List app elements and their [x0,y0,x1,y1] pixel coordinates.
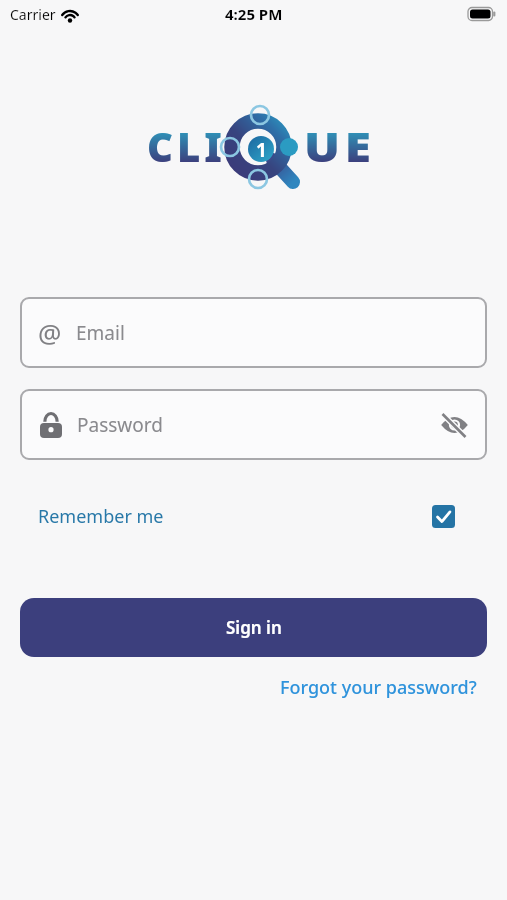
button[interactable]: Remember me [38,504,455,529]
button[interactable]: Sign in [20,598,487,657]
button[interactable]: @ [20,297,487,368]
button[interactable]: Password [20,389,487,460]
staticText: Remember me [38,504,164,529]
button[interactable] [432,505,455,528]
staticText: Sign in [226,616,282,639]
staticText: @ [38,315,62,350]
staticText: Carrier [10,5,56,24]
staticText: 4:25 PM [225,4,283,24]
staticText: UE [304,119,377,173]
staticText: Email [76,320,125,346]
staticText: Password [77,412,163,438]
staticText: 1 [256,137,267,161]
button[interactable]: Forgot your password? [280,675,477,700]
staticText: CLI [147,119,226,173]
